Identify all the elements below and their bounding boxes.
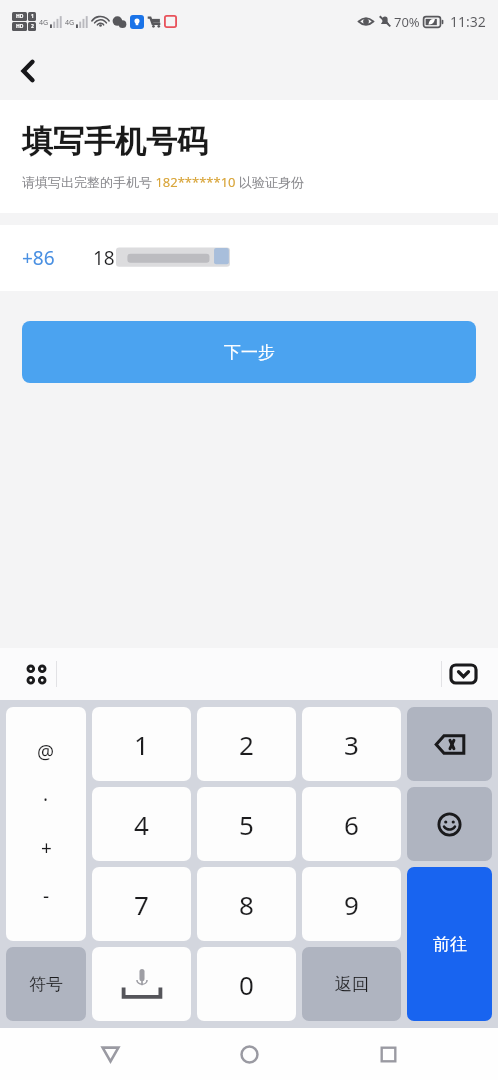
button[interactable]: 7 [92, 867, 191, 941]
staticText: 11:32 [450, 12, 486, 31]
staticText: 1 [31, 13, 34, 20]
staticText: + [41, 835, 52, 861]
staticText: 18 [93, 245, 115, 271]
button[interactable]: 3 [302, 707, 401, 781]
staticText: 请填写出完整的手机号 182******10 以验证身份 [22, 173, 304, 191]
staticText: 4G [39, 18, 49, 28]
button[interactable]: 符号 [6, 947, 86, 1021]
staticText: 填写手机号码 [22, 122, 208, 161]
button[interactable]: 5 [197, 787, 296, 861]
staticText: 4G [65, 18, 75, 28]
button[interactable]: Recents [359, 1028, 417, 1080]
button[interactable]: 前往 [407, 867, 492, 1021]
staticText: 返回 [335, 974, 369, 995]
button[interactable]: 2 [197, 707, 296, 781]
staticText: 1 [134, 727, 149, 762]
button[interactable]: Back [81, 1028, 139, 1080]
button[interactable]: Space / Voice input [92, 947, 191, 1021]
button[interactable]: +86 [0, 225, 498, 291]
button[interactable]: 1 [92, 707, 191, 781]
staticText: · [43, 787, 49, 813]
staticText: 6 [344, 807, 359, 842]
button[interactable]: 9 [302, 867, 401, 941]
staticText: 7 [134, 887, 149, 922]
staticText: HD [16, 13, 24, 20]
button[interactable]: Delete [407, 707, 492, 781]
staticText: 0 [239, 967, 254, 1002]
staticText: 8 [239, 887, 254, 922]
staticText: 前往 [433, 934, 467, 955]
button[interactable]: 下一步 [22, 321, 476, 383]
button[interactable]: 6 [302, 787, 401, 861]
button[interactable]: 返回 [302, 947, 401, 1021]
staticText: 2 [31, 23, 34, 30]
staticText: 5 [239, 807, 254, 842]
button[interactable]: Hide keyboard [442, 653, 484, 695]
staticText: @ [37, 739, 55, 765]
button[interactable]: Back [6, 49, 50, 93]
staticText: 4 [134, 807, 149, 842]
staticText: 70% [394, 13, 420, 31]
button[interactable]: 4 [92, 787, 191, 861]
button[interactable]: Keyboard modes [16, 654, 56, 694]
staticText: 下一步 [224, 342, 275, 363]
staticText: 9 [344, 887, 359, 922]
button[interactable]: @ [6, 707, 86, 941]
staticText: 3 [344, 727, 359, 762]
button[interactable]: Home [220, 1028, 278, 1080]
button[interactable]: Emoji [407, 787, 492, 861]
staticText: - [43, 883, 50, 909]
staticText: HD [16, 23, 24, 30]
staticText: 2 [239, 727, 254, 762]
button[interactable]: 0 [197, 947, 296, 1021]
staticText: 符号 [29, 974, 63, 995]
button[interactable]: 8 [197, 867, 296, 941]
staticText: +86 [22, 245, 55, 271]
